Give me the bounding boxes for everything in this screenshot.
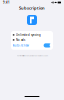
staticText: Unlimited syncing (16, 33, 41, 37)
staticText: Subscription (19, 5, 45, 11)
staticText: Auto-renew (13, 44, 29, 47)
staticText: No ads (16, 38, 25, 42)
staticText: Payment will be charged to your Apple Ac… (16, 55, 47, 57)
staticText: 9:41 (3, 1, 10, 4)
button[interactable]: Auto-renew (11, 42, 53, 48)
